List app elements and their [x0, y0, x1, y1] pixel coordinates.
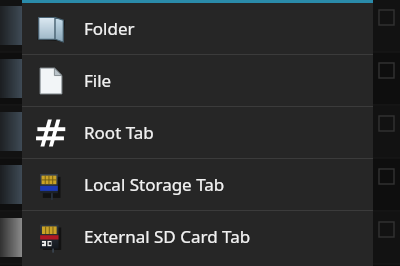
staticText: Root Tab: [84, 121, 154, 144]
button[interactable]: Folder: [22, 3, 373, 54]
button[interactable]: File: [22, 55, 373, 106]
staticText: File: [84, 69, 112, 92]
button[interactable]: External SD Card Tab: [22, 211, 373, 262]
button[interactable]: Local Storage Tab: [22, 159, 373, 210]
staticText: Local Storage Tab: [84, 173, 225, 196]
staticText: External SD Card Tab: [84, 225, 251, 248]
button[interactable]: Root Tab: [22, 107, 373, 158]
staticText: Folder: [84, 17, 135, 40]
